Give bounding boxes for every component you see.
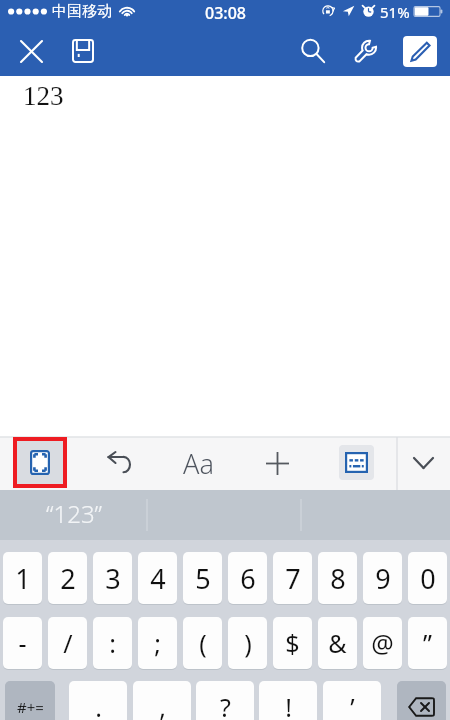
staticText: 0 <box>420 560 436 597</box>
staticText: $ <box>285 626 300 660</box>
button[interactable]: : <box>93 617 132 669</box>
button[interactable]: ’ <box>323 681 381 720</box>
button[interactable]: @ <box>363 617 402 669</box>
staticText: ; <box>154 626 161 660</box>
staticText: ) <box>244 626 252 660</box>
button[interactable]: ( <box>183 617 222 669</box>
button[interactable]: - <box>3 617 42 669</box>
staticText: ’ <box>350 690 355 720</box>
staticText: 中国移动 <box>52 2 112 21</box>
staticText: 03:08 <box>205 2 246 24</box>
button[interactable]: Hide keyboard <box>402 442 444 484</box>
button[interactable]: #+= <box>5 681 55 720</box>
staticText: : <box>109 626 116 660</box>
button[interactable]: , <box>133 681 191 720</box>
button[interactable]: ? <box>196 681 254 720</box>
button[interactable]: Undo <box>98 442 140 484</box>
staticText: . <box>95 690 102 720</box>
staticText: 2 <box>60 560 76 597</box>
staticText: ( <box>199 626 207 660</box>
staticText: Aa <box>183 445 214 482</box>
button[interactable]: 5 <box>183 552 222 604</box>
staticText: “123” <box>46 497 103 530</box>
button[interactable]: 0 <box>408 552 447 604</box>
button[interactable]: 1 <box>3 552 42 604</box>
button[interactable]: 3 <box>93 552 132 604</box>
staticText: 9 <box>375 560 391 597</box>
staticText: 123 <box>23 81 64 111</box>
button[interactable]: “123” <box>0 490 147 540</box>
staticText: / <box>63 626 73 660</box>
button[interactable]: Tools <box>344 30 386 72</box>
button[interactable]: 2 <box>48 552 87 604</box>
button[interactable]: & <box>318 617 357 669</box>
button[interactable]: $ <box>273 617 312 669</box>
button[interactable]: 6 <box>228 552 267 604</box>
staticText: 4 <box>150 560 166 597</box>
staticText: 51% <box>380 2 410 22</box>
staticText: @ <box>371 626 394 660</box>
button[interactable]: Fit page <box>16 439 64 486</box>
button[interactable]: Keyboard <box>339 445 374 480</box>
button[interactable]: 8 <box>318 552 357 604</box>
button[interactable]: ) <box>228 617 267 669</box>
button[interactable]: Search <box>292 30 334 72</box>
staticText: ! <box>285 690 292 720</box>
button[interactable]: ” <box>408 617 447 669</box>
staticText: 1 <box>15 560 31 597</box>
button[interactable]: Edit <box>403 36 437 67</box>
button[interactable]: Save <box>62 30 104 72</box>
staticText: 7 <box>285 560 301 597</box>
staticText: 3 <box>105 560 121 597</box>
button[interactable]: 4 <box>138 552 177 604</box>
button[interactable]: ; <box>138 617 177 669</box>
staticText: 6 <box>240 560 256 597</box>
staticText: 5 <box>195 560 211 597</box>
button[interactable]: 9 <box>363 552 402 604</box>
staticText: ” <box>423 626 432 660</box>
button[interactable]: Format text <box>177 442 219 484</box>
staticText: , <box>159 690 166 720</box>
staticText: - <box>18 626 27 660</box>
staticText: & <box>328 626 347 660</box>
button[interactable]: 7 <box>273 552 312 604</box>
staticText: 8 <box>330 560 346 597</box>
button[interactable]: . <box>69 681 127 720</box>
staticText: #+= <box>17 697 44 717</box>
button[interactable]: Insert <box>256 442 298 484</box>
button[interactable]: ! <box>259 681 317 720</box>
button[interactable]: Close <box>10 30 52 72</box>
button[interactable]: / <box>48 617 87 669</box>
button[interactable]: Backspace <box>397 681 446 720</box>
staticText: ? <box>220 690 231 720</box>
